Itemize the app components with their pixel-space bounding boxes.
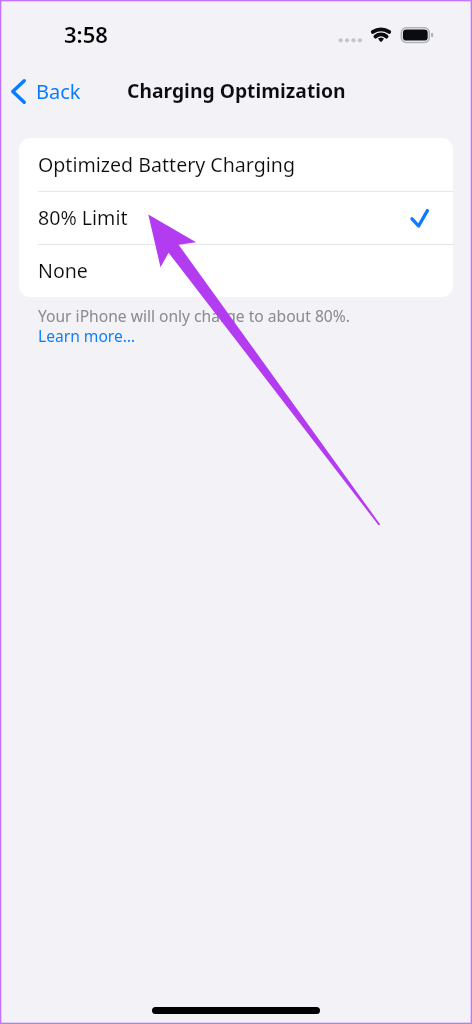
staticText: None (38, 257, 88, 284)
staticText: Back (36, 78, 81, 105)
button[interactable]: Optimized Battery Charging (19, 138, 453, 191)
staticText: Your iPhone will only charge to about 80… (38, 305, 350, 326)
staticText: Optimized Battery Charging (38, 151, 296, 178)
button[interactable]: 80% Limit (19, 191, 453, 244)
button[interactable]: None (19, 244, 453, 297)
button[interactable]: Back (0, 72, 95, 111)
staticText: 80% Limit (38, 204, 128, 231)
staticText: 3:58 (64, 19, 108, 49)
staticText: Learn more… (38, 325, 136, 346)
button[interactable]: Learn more… (38, 325, 136, 346)
staticText: Charging Optimization (127, 77, 346, 103)
other: Selected (411, 209, 428, 226)
